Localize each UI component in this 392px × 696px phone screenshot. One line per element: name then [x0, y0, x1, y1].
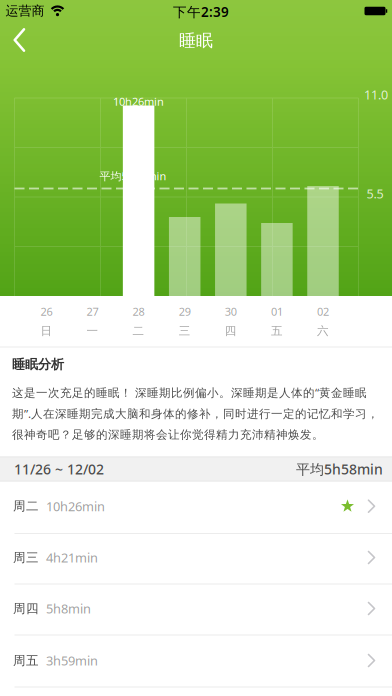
staticText: 四	[225, 324, 237, 338]
staticText: 周四	[13, 601, 39, 616]
staticText: 周二	[13, 498, 39, 514]
staticText: 01	[271, 304, 283, 319]
staticText: 平均5h58min	[296, 459, 383, 479]
button[interactable]: 周二	[0, 481, 392, 531]
button[interactable]: 周四	[0, 583, 392, 633]
staticText: 五	[271, 324, 283, 338]
staticText: 睡眠	[179, 30, 213, 51]
staticText: 02	[317, 304, 329, 319]
staticText: 下午2:39	[173, 3, 229, 21]
staticText: 周五	[13, 653, 39, 668]
staticText: 很神奇吧？足够的深睡期将会让你觉得精力充沛精神焕发。	[12, 427, 324, 442]
staticText: 29	[179, 304, 191, 319]
staticText: 10h26min	[46, 497, 105, 515]
staticText: 日	[40, 324, 52, 338]
staticText: 11.0	[364, 86, 388, 103]
button[interactable]: 周五	[0, 635, 392, 685]
staticText: 二	[133, 324, 145, 338]
staticText: 三	[179, 324, 191, 338]
staticText: 28	[133, 304, 145, 319]
staticText: 30	[225, 304, 237, 319]
staticText: 运营商	[5, 3, 44, 19]
staticText: 10h26min	[113, 94, 164, 109]
staticText: 期”.人在深睡期完成大脑和身体的修补，同时进行一定的记忆和学习，	[12, 406, 379, 421]
button[interactable]: Back	[0, 20, 40, 60]
staticText: 3h59min	[46, 652, 98, 669]
staticText: 周三	[13, 550, 39, 565]
staticText: 5.5	[366, 185, 383, 202]
button[interactable]: 周三	[0, 532, 392, 582]
staticText: 睡眠分析	[12, 356, 64, 373]
staticText: 这是一次充足的睡眠！ 深睡期比例偏小。深睡期是人体的“黄金睡眠	[12, 385, 367, 400]
staticText: 27	[86, 304, 98, 319]
staticText: 4h21min	[46, 549, 98, 566]
staticText: 11/26 ~ 12/02	[14, 459, 104, 479]
staticText: 5h8min	[46, 600, 91, 617]
staticText: 26	[40, 304, 52, 319]
staticText: 平均5h58min	[99, 168, 166, 183]
staticText: 六	[317, 324, 329, 338]
staticText: 一	[86, 324, 98, 338]
